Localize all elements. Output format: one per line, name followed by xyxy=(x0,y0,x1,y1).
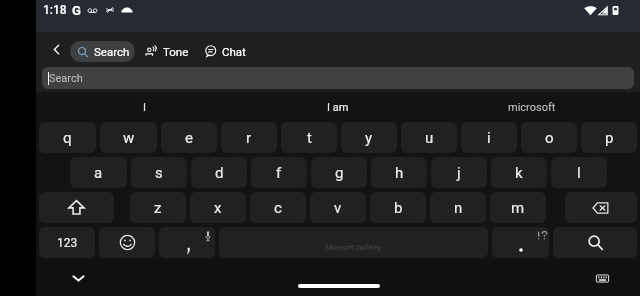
button[interactable]: r xyxy=(221,122,277,153)
staticText: s xyxy=(155,164,163,182)
button[interactable]: c xyxy=(250,192,306,223)
staticText: f xyxy=(276,164,282,182)
button[interactable]: u xyxy=(401,122,457,153)
button[interactable]: Hide keyboard xyxy=(64,264,92,292)
staticText: a xyxy=(94,164,103,182)
button[interactable]: x xyxy=(190,192,246,223)
staticText: microsoft xyxy=(508,101,556,114)
button[interactable]: Emoji xyxy=(99,227,155,258)
staticText: e xyxy=(185,129,193,147)
staticText: i xyxy=(487,129,491,147)
staticText: u xyxy=(425,129,434,147)
staticText: g xyxy=(335,164,344,182)
button[interactable]: e xyxy=(161,122,217,153)
staticText: z xyxy=(154,199,162,217)
staticText: r xyxy=(246,129,252,147)
button[interactable]: s xyxy=(131,157,187,188)
button[interactable]: Change keyboard xyxy=(588,264,616,292)
button[interactable]: Comma and voice input xyxy=(159,227,215,258)
staticText: p xyxy=(605,129,614,147)
button[interactable]: a xyxy=(70,157,127,188)
button[interactable]: Tone xyxy=(143,39,191,63)
button[interactable]: l xyxy=(551,157,607,188)
button[interactable]: t xyxy=(281,122,337,153)
button[interactable]: 123 xyxy=(39,227,95,258)
staticText: 1:18 xyxy=(43,3,67,17)
staticText: Chat xyxy=(222,45,246,58)
staticText: j xyxy=(457,164,461,182)
button[interactable]: q xyxy=(39,122,96,153)
staticText: l xyxy=(577,164,581,182)
button[interactable]: Shift xyxy=(39,192,114,223)
button[interactable]: I am xyxy=(241,92,435,122)
button[interactable]: I xyxy=(48,92,241,122)
staticText: I am xyxy=(327,101,349,114)
button[interactable]: z xyxy=(130,192,186,223)
staticText: y xyxy=(365,129,373,147)
button[interactable]: k xyxy=(491,157,547,188)
staticText: Search xyxy=(94,45,130,58)
button[interactable]: p xyxy=(581,122,637,153)
button[interactable]: y xyxy=(341,122,397,153)
button[interactable]: Search xyxy=(70,41,135,62)
button[interactable]: m xyxy=(490,192,546,223)
staticText: Tone xyxy=(163,45,189,58)
button[interactable]: d xyxy=(191,157,247,188)
button[interactable]: i xyxy=(461,122,517,153)
button[interactable]: j xyxy=(431,157,487,188)
staticText: d xyxy=(215,164,224,182)
staticText: I xyxy=(143,101,146,114)
staticText: q xyxy=(63,129,72,147)
button[interactable]: b xyxy=(370,192,426,223)
staticText: G xyxy=(72,3,81,17)
staticText: n xyxy=(454,199,463,217)
staticText: b xyxy=(394,199,403,217)
staticText: h xyxy=(395,164,404,182)
button[interactable]: h xyxy=(371,157,427,188)
button[interactable]: o xyxy=(521,122,577,153)
staticText: Search xyxy=(49,72,83,85)
button[interactable]: g xyxy=(311,157,367,188)
staticText: k xyxy=(515,164,523,182)
button[interactable]: Search xyxy=(42,67,634,89)
button[interactable]: f xyxy=(251,157,307,188)
staticText: 123 xyxy=(57,236,78,250)
staticText: w xyxy=(123,129,135,147)
button[interactable]: v xyxy=(310,192,366,223)
button[interactable]: Search xyxy=(553,227,637,258)
staticText: o xyxy=(545,129,554,147)
staticText: m xyxy=(511,199,525,217)
button[interactable]: Period and punctuation xyxy=(492,227,549,258)
button[interactable]: Chat xyxy=(202,39,248,63)
staticText: Microsoft SwiftKey xyxy=(326,244,381,252)
button[interactable]: w xyxy=(100,122,157,153)
staticText: x xyxy=(214,199,222,217)
button[interactable]: microsoft xyxy=(435,92,629,122)
staticText: t xyxy=(307,129,312,147)
staticText: c xyxy=(274,199,282,217)
button[interactable]: n xyxy=(430,192,486,223)
staticText: v xyxy=(334,199,342,217)
button[interactable]: Backspace xyxy=(565,192,637,223)
button[interactable]: Back xyxy=(42,35,70,63)
